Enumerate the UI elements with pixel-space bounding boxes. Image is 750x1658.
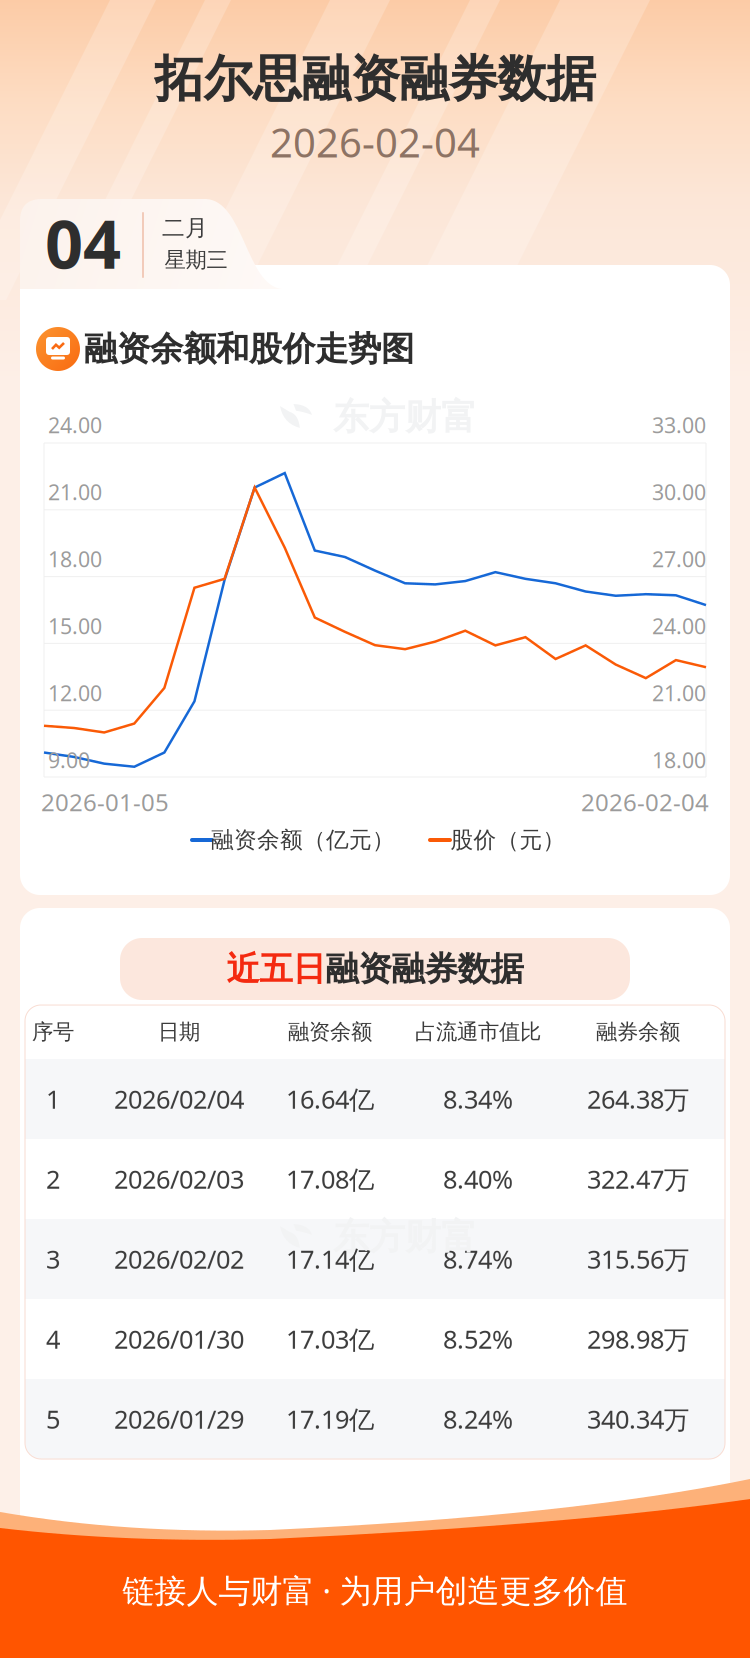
staticText: 18.00: [652, 746, 706, 774]
staticText: 15.00: [48, 612, 102, 640]
staticText: 4: [46, 1322, 60, 1356]
staticText: 2026-01-05: [41, 786, 169, 818]
staticText: 17.08亿: [286, 1162, 374, 1196]
staticText: 1: [46, 1082, 60, 1116]
staticText: 2026/02/04: [114, 1082, 244, 1116]
staticText: 17.19亿: [286, 1402, 374, 1436]
staticText: 2026/02/03: [114, 1162, 244, 1196]
staticText: 21.00: [652, 679, 706, 707]
staticText: 8.24%: [443, 1402, 513, 1436]
staticText: 日期: [158, 1019, 200, 1045]
staticText: 2026-02-04: [581, 786, 709, 818]
staticText: 占流通市值比: [415, 1019, 541, 1045]
staticText: 融资余额: [288, 1019, 372, 1045]
staticText: 27.00: [652, 545, 706, 573]
staticText: 东方财富: [333, 1215, 477, 1259]
staticText: 04: [45, 199, 121, 287]
staticText: 264.38万: [587, 1082, 689, 1116]
staticText: 5: [46, 1402, 60, 1436]
staticText: 3: [46, 1242, 60, 1276]
staticText: 2026/01/30: [114, 1322, 244, 1356]
staticText: 21.00: [48, 478, 102, 506]
staticText: 8.34%: [443, 1082, 513, 1116]
staticText: 298.98万: [587, 1322, 689, 1356]
staticText: 315.56万: [587, 1242, 689, 1276]
staticText: 2026/01/29: [114, 1402, 244, 1436]
staticText: 二月: [162, 214, 208, 242]
staticText: 星期三: [164, 247, 227, 273]
staticText: 8.40%: [443, 1162, 513, 1196]
staticText: 17.03亿: [286, 1322, 374, 1356]
staticText: 融资余额和股价走势图: [84, 328, 414, 369]
staticText: 2: [46, 1162, 60, 1196]
staticText: 链接人与财富 · 为用户创造更多价值: [122, 1569, 627, 1611]
staticText: 17.14亿: [286, 1242, 374, 1276]
staticText: 序号: [32, 1019, 74, 1045]
staticText: 融券余额: [596, 1019, 680, 1045]
staticText: 340.34万: [587, 1402, 689, 1436]
staticText: 8.74%: [443, 1242, 513, 1276]
staticText: 近五日: [226, 948, 325, 989]
staticText: 拓尔思融资融券数据: [154, 49, 595, 109]
staticText: 16.64亿: [286, 1082, 374, 1116]
staticText: 2026/02/02: [114, 1242, 244, 1276]
staticText: 24.00: [48, 411, 102, 439]
staticText: 8.52%: [443, 1322, 513, 1356]
staticText: 12.00: [48, 679, 102, 707]
staticText: 融资余额（亿元）: [211, 826, 395, 854]
staticText: 2026-02-04: [270, 115, 480, 168]
staticText: 322.47万: [587, 1162, 689, 1196]
staticText: 33.00: [652, 411, 706, 439]
staticText: 18.00: [48, 545, 102, 573]
staticText: 9.00: [48, 746, 90, 774]
staticText: 24.00: [652, 612, 706, 640]
staticText: 融资融券数据: [325, 948, 523, 989]
staticText: 30.00: [652, 478, 706, 506]
staticText: 东方财富: [333, 395, 477, 439]
staticText: 股价（元）: [450, 826, 565, 854]
